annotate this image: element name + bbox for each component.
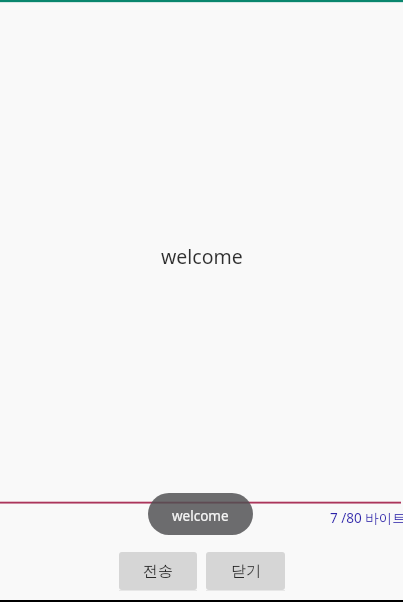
staticText: 전송 [143,562,173,581]
button[interactable]: 닫기 [206,552,285,590]
button[interactable]: 전송 [119,552,197,590]
staticText: 닫기 [231,562,261,581]
staticText: welcome [161,243,243,270]
staticText: 7 /80 바이트 [330,509,403,527]
button[interactable]: welcome [148,493,253,535]
staticText: welcome [172,507,229,525]
